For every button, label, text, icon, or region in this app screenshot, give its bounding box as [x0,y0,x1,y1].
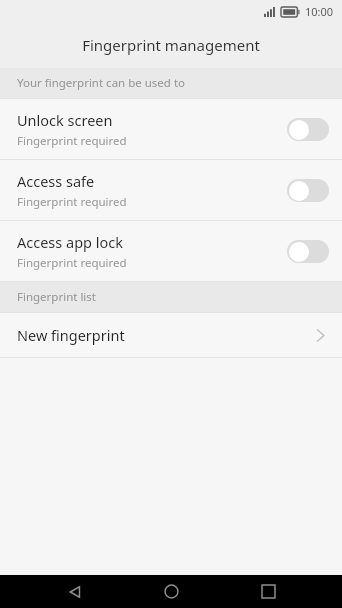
button[interactable]: Access safe toggle [287,179,329,202]
button[interactable]: Access app lock toggle [287,240,329,263]
button[interactable]: Home [149,575,193,608]
button[interactable]: Access safe [0,160,342,220]
staticText: Access app lock [17,232,123,252]
button[interactable]: Unlock screen toggle [287,118,329,141]
staticText: Fingerprint required [17,255,127,271]
staticText: Fingerprint management [82,35,260,55]
staticText: Fingerprint list [17,289,96,305]
button[interactable]: Access app lock [0,221,342,281]
staticText: 10:00 [305,4,334,19]
button[interactable]: Recents [246,575,290,608]
staticText: Access safe [17,171,95,191]
button[interactable]: Back [53,575,97,608]
staticText: Fingerprint required [17,133,127,149]
staticText: New fingerprint [17,325,316,345]
staticText: Fingerprint required [17,194,127,210]
other: Open [316,328,325,343]
button[interactable]: New fingerprint [0,313,342,357]
staticText: Your fingerprint can be used to [17,75,186,91]
button[interactable]: Unlock screen [0,99,342,159]
staticText: Unlock screen [17,110,113,130]
